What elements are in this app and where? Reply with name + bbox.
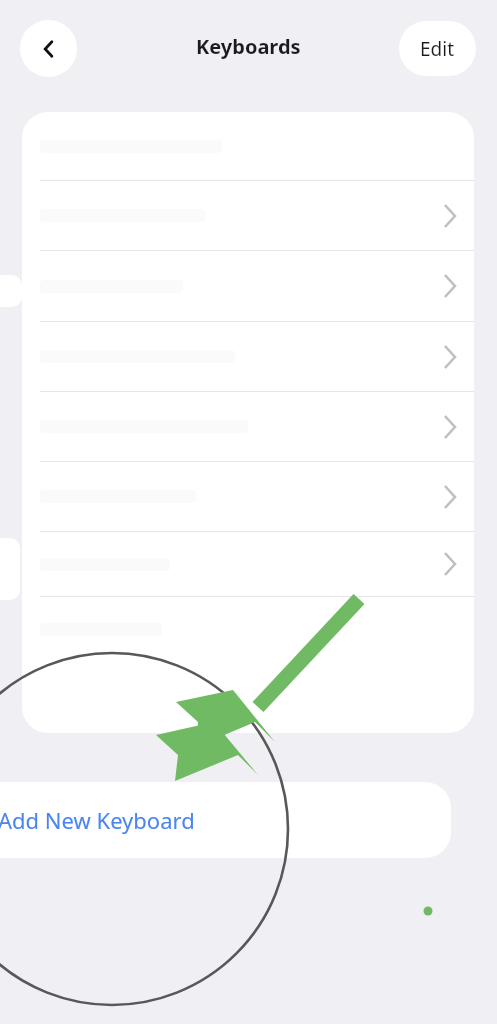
button[interactable]	[22, 597, 474, 661]
button[interactable]: Back	[20, 20, 77, 77]
button[interactable]	[22, 532, 474, 596]
button[interactable]: Add New Keyboard	[0, 782, 451, 858]
button[interactable]	[22, 181, 474, 250]
button[interactable]	[22, 322, 474, 391]
staticText: Add New Keyboard	[0, 805, 195, 835]
button[interactable]	[22, 462, 474, 531]
button[interactable]	[22, 251, 474, 321]
button[interactable]	[22, 392, 474, 461]
staticText: Keyboards	[196, 33, 301, 60]
staticText: Edit	[420, 36, 455, 62]
button[interactable]: Edit	[399, 21, 476, 76]
